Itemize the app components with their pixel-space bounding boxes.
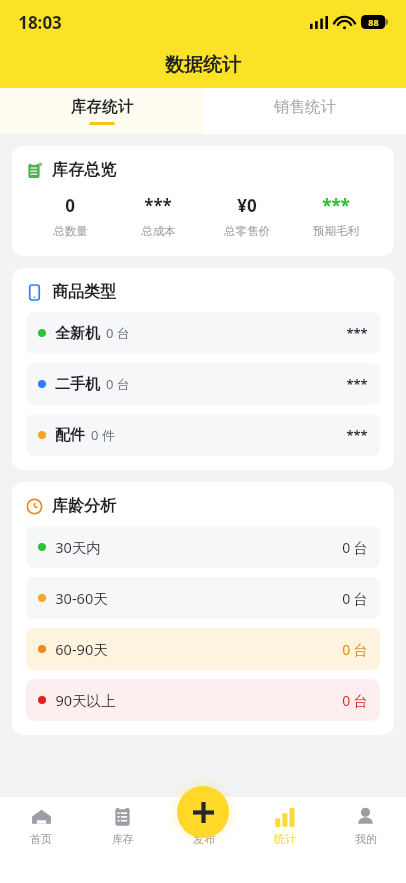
staticText: 0 台 (106, 324, 130, 342)
staticText: 发布 (193, 832, 215, 846)
staticText: 统计 (274, 832, 296, 846)
staticText: 0 台 (342, 589, 368, 608)
button[interactable]: 库存统计 (0, 88, 203, 134)
staticText: 总成本 (141, 224, 176, 238)
staticText: 总零售价 (224, 224, 270, 238)
staticText: 全新机 (55, 324, 100, 343)
staticText: 商品类型 (52, 282, 116, 302)
staticText: 88 (368, 16, 379, 28)
staticText: 库存统计 (71, 97, 133, 117)
button[interactable]: 我的 (325, 797, 406, 855)
staticText: 总数量 (53, 224, 88, 238)
staticText: *** (346, 375, 368, 393)
staticText: 90天以上 (55, 690, 116, 710)
staticText: *** (346, 324, 368, 342)
button[interactable]: 库存 (82, 797, 163, 855)
button[interactable]: 30天内 (26, 526, 380, 568)
staticText: 0 台 (342, 538, 368, 557)
staticText: 配件 (55, 426, 85, 445)
button[interactable]: 发布 (177, 786, 229, 838)
staticText: 预期毛利 (313, 224, 359, 238)
staticText: 二手机 (55, 375, 100, 394)
staticText: 30-60天 (55, 588, 108, 608)
staticText: 0 台 (342, 691, 368, 710)
staticText: 数据统计 (165, 53, 241, 77)
staticText: 库龄分析 (52, 496, 116, 516)
button[interactable]: 销售统计 (203, 88, 406, 134)
button[interactable]: 配件 (26, 414, 380, 456)
staticText: *** (144, 194, 172, 217)
staticText: 0 件 (91, 426, 115, 444)
staticText: 60-90天 (55, 639, 108, 659)
staticText: 我的 (355, 832, 377, 846)
button[interactable]: 30-60天 (26, 577, 380, 619)
button[interactable]: 统计 (244, 797, 325, 855)
staticText: 库存 (112, 832, 134, 846)
staticText: 库存总览 (52, 160, 116, 180)
button[interactable]: 二手机 (26, 363, 380, 405)
button[interactable]: 60-90天 (26, 628, 380, 670)
staticText: *** (322, 194, 350, 217)
staticText: 首页 (30, 832, 52, 846)
button[interactable]: 发布 (163, 797, 244, 855)
staticText: 销售统计 (274, 97, 336, 117)
button[interactable]: 90天以上 (26, 679, 380, 721)
staticText: 30天内 (55, 537, 101, 557)
staticText: *** (346, 426, 368, 444)
staticText: 0 台 (342, 640, 368, 659)
staticText: 0 台 (106, 375, 130, 393)
button[interactable]: 全新机 (26, 312, 380, 354)
staticText: 0 (65, 194, 75, 217)
button[interactable]: 首页 (0, 797, 82, 855)
staticText: ¥0 (237, 194, 257, 217)
staticText: 18:03 (18, 11, 62, 34)
